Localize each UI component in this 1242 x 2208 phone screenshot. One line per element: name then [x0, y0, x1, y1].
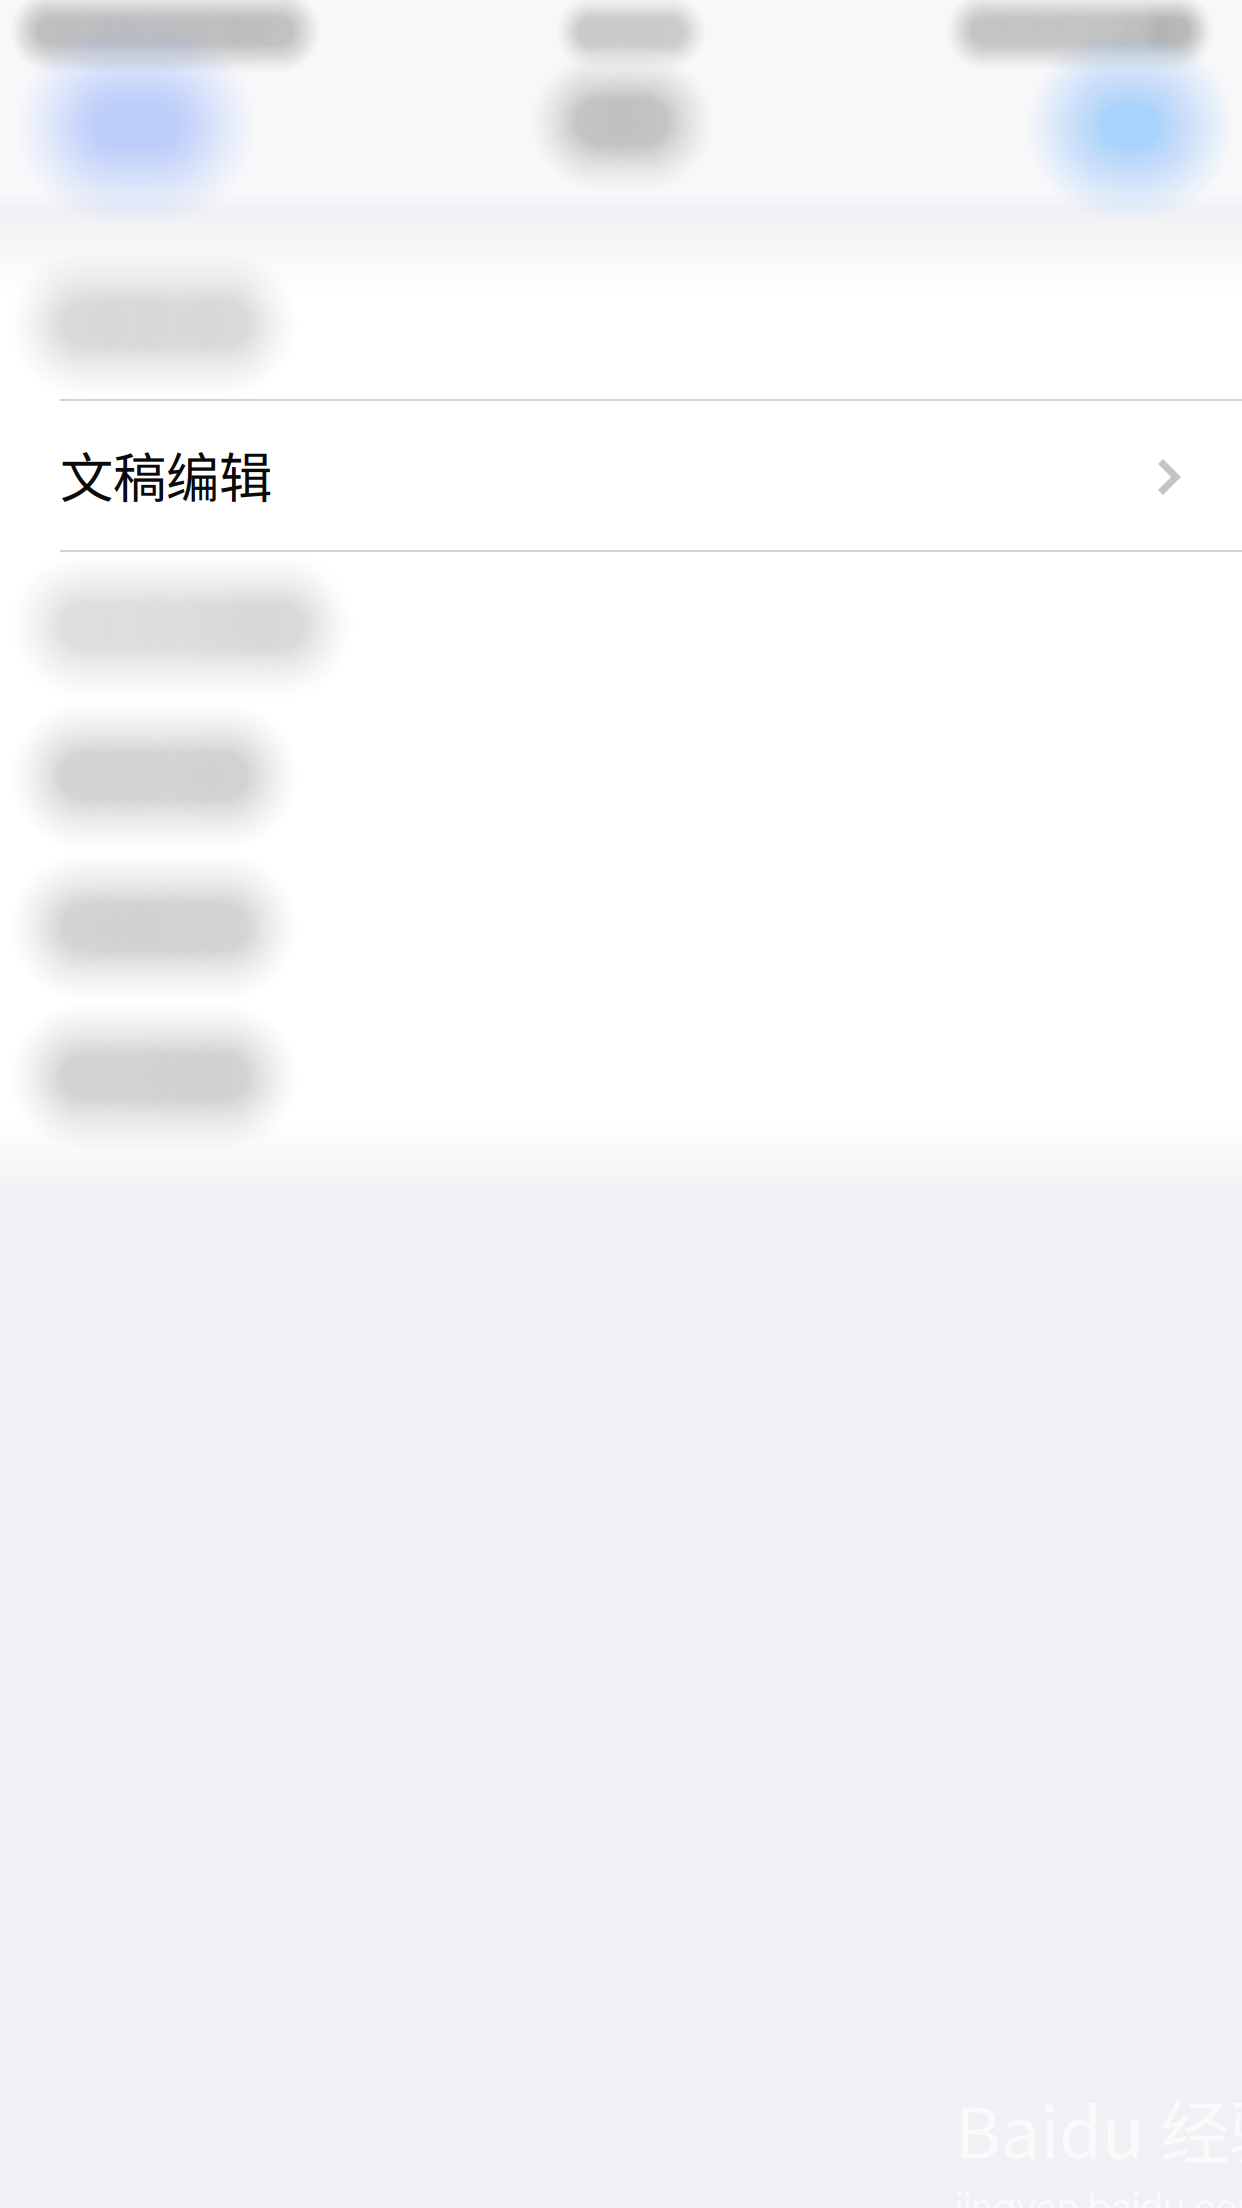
button[interactable]: 文稿编辑 [0, 401, 1242, 551]
staticText: Baidu 经验 [955, 2078, 1242, 2178]
staticText: 文稿编辑 [60, 436, 272, 513]
